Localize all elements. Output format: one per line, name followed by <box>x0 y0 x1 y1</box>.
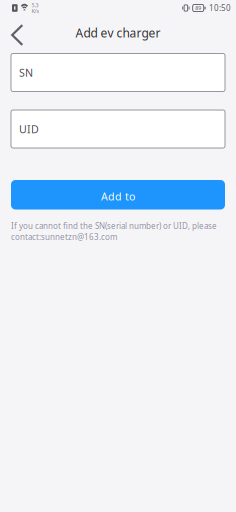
staticText: UID <box>19 122 39 136</box>
staticText: 89 <box>195 4 201 12</box>
staticText: Add to <box>101 189 135 203</box>
staticText: If you cannot find the SN(serial number)… <box>11 220 217 242</box>
staticText: K/s <box>31 7 39 14</box>
button[interactable]: Add to <box>11 180 225 209</box>
staticText: Add ev charger <box>75 25 160 41</box>
staticText: 10:50 <box>209 3 231 13</box>
button[interactable]: UID <box>11 110 225 148</box>
staticText: SN <box>19 65 33 80</box>
button[interactable]: Back <box>0 16 34 49</box>
button[interactable]: SN <box>11 53 225 91</box>
staticText: 5.3 <box>31 1 38 9</box>
